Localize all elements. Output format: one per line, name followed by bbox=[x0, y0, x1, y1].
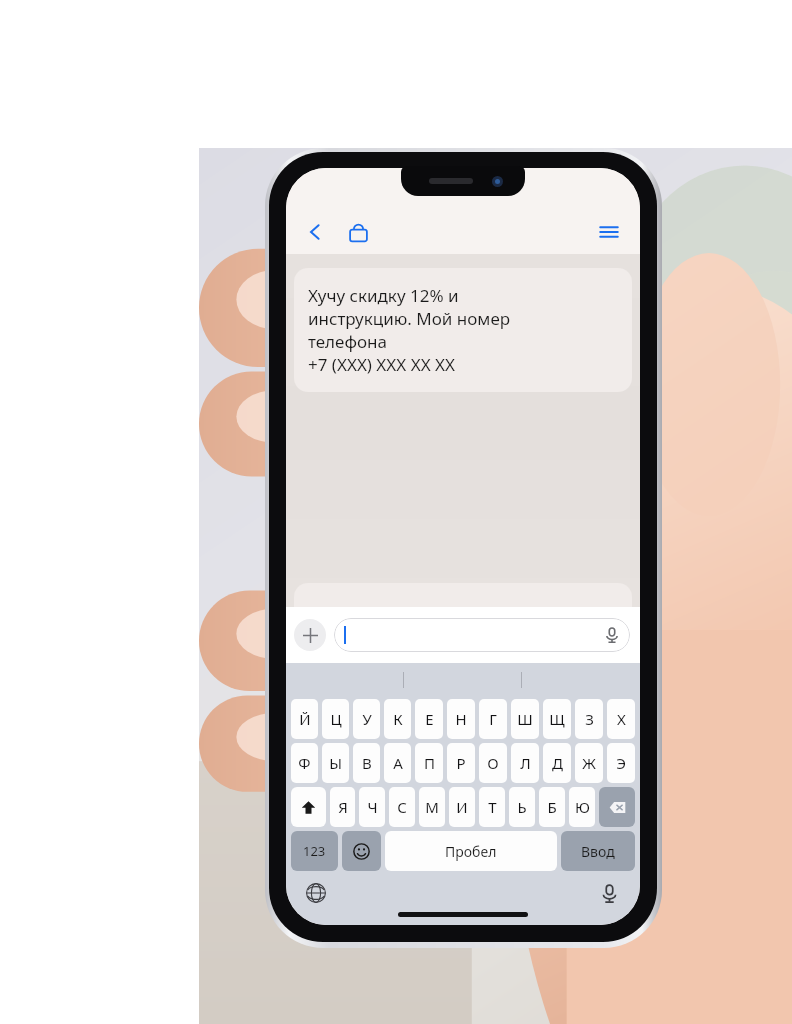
button[interactable]: Shift bbox=[291, 787, 326, 827]
staticText: Ю bbox=[575, 797, 590, 817]
button[interactable]: Е bbox=[415, 699, 443, 739]
staticText: К bbox=[393, 709, 403, 729]
button[interactable]: Пробел bbox=[385, 831, 557, 871]
button[interactable]: Хучу скидку 12% и инструкцию. Мой номер … bbox=[294, 268, 632, 392]
button[interactable]: Ввод bbox=[561, 831, 635, 871]
button[interactable]: З bbox=[575, 699, 603, 739]
button[interactable]: Ц bbox=[322, 699, 349, 739]
staticText: Б bbox=[547, 797, 557, 817]
button[interactable]: О bbox=[479, 743, 507, 783]
staticText: С bbox=[397, 797, 407, 817]
staticText: Ы bbox=[329, 753, 342, 773]
button[interactable]: Menu bbox=[594, 217, 624, 247]
button[interactable]: Backspace bbox=[599, 787, 635, 827]
staticText: Ч bbox=[367, 797, 378, 817]
button[interactable]: Voice input bbox=[334, 618, 630, 652]
button[interactable]: Х bbox=[607, 699, 635, 739]
staticText: Х bbox=[617, 709, 626, 729]
staticText: Щ bbox=[549, 709, 565, 729]
staticText: Р bbox=[456, 753, 466, 773]
button[interactable]: Ф bbox=[291, 743, 318, 783]
staticText: П bbox=[424, 753, 435, 773]
staticText: И bbox=[456, 797, 468, 817]
button[interactable]: С bbox=[389, 787, 415, 827]
staticText: У bbox=[362, 709, 372, 729]
button[interactable]: Д bbox=[543, 743, 571, 783]
button[interactable]: Б bbox=[539, 787, 565, 827]
staticText: О bbox=[487, 753, 499, 773]
button[interactable]: Ч bbox=[359, 787, 385, 827]
button[interactable]: Emoji bbox=[342, 831, 381, 871]
button[interactable]: У bbox=[353, 699, 380, 739]
button[interactable]: 123 bbox=[291, 831, 338, 871]
staticText: Д bbox=[552, 753, 563, 773]
staticText: М bbox=[425, 797, 439, 817]
button[interactable]: Р bbox=[447, 743, 475, 783]
staticText: Ж bbox=[582, 753, 596, 773]
staticText: Т bbox=[488, 797, 497, 817]
staticText: Н bbox=[455, 709, 467, 729]
staticText: Л bbox=[520, 753, 531, 773]
button[interactable]: Ж bbox=[575, 743, 603, 783]
staticText: З bbox=[585, 709, 594, 729]
staticText: Ц bbox=[330, 709, 342, 729]
staticText: Э bbox=[616, 753, 626, 773]
button[interactable]: П bbox=[415, 743, 443, 783]
button[interactable]: Attach bbox=[294, 619, 326, 651]
staticText: Ф bbox=[298, 753, 311, 773]
button[interactable]: Ы bbox=[322, 743, 349, 783]
button[interactable]: Voice typing bbox=[594, 878, 624, 908]
staticText: Г bbox=[489, 709, 497, 729]
button[interactable]: Г bbox=[479, 699, 507, 739]
button[interactable]: Back bbox=[302, 219, 328, 245]
staticText: А bbox=[393, 753, 403, 773]
button[interactable]: Ш bbox=[511, 699, 539, 739]
button[interactable]: Л bbox=[511, 743, 539, 783]
button[interactable]: Ь bbox=[509, 787, 535, 827]
button[interactable]: В bbox=[353, 743, 380, 783]
button[interactable]: Shop bbox=[344, 218, 372, 246]
button[interactable]: Ю bbox=[569, 787, 595, 827]
staticText: Е bbox=[425, 709, 434, 729]
button[interactable]: И bbox=[449, 787, 475, 827]
button[interactable]: Т bbox=[479, 787, 505, 827]
button[interactable]: К bbox=[384, 699, 411, 739]
button[interactable]: Change language bbox=[300, 877, 332, 909]
staticText: Ввод bbox=[581, 842, 615, 861]
staticText: Й bbox=[299, 709, 311, 729]
button[interactable]: Щ bbox=[543, 699, 571, 739]
staticText: Хучу скидку 12% и инструкцию. Мой номер … bbox=[308, 284, 511, 376]
button[interactable]: Н bbox=[447, 699, 475, 739]
button[interactable]: Я bbox=[330, 787, 355, 827]
staticText: Ь bbox=[517, 797, 527, 817]
staticText: 123 bbox=[303, 842, 326, 860]
button[interactable]: Й bbox=[291, 699, 318, 739]
staticText: Пробел bbox=[445, 842, 497, 861]
staticText: Я bbox=[338, 797, 348, 817]
button[interactable]: М bbox=[419, 787, 445, 827]
other: Voice input bbox=[604, 627, 620, 643]
button[interactable]: А bbox=[384, 743, 411, 783]
staticText: В bbox=[362, 753, 372, 773]
staticText: Ш bbox=[517, 709, 533, 729]
button[interactable]: Э bbox=[607, 743, 635, 783]
